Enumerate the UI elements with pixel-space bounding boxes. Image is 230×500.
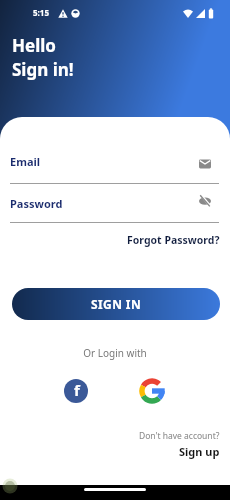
staticText: Sign in!	[12, 58, 74, 81]
staticText: 5:15	[33, 7, 49, 18]
staticText: Password	[10, 196, 63, 211]
staticText: Don't have account?	[139, 430, 220, 442]
button[interactable]	[139, 378, 165, 404]
button[interactable]: SIGN IN	[12, 288, 220, 320]
button[interactable]: Forgot Password?	[127, 233, 220, 247]
button[interactable]: Password	[0, 193, 230, 225]
button[interactable]: Sign up	[179, 444, 220, 459]
button[interactable]: Email	[0, 150, 230, 186]
button[interactable]: f	[64, 379, 88, 403]
staticText: SIGN IN	[91, 296, 142, 312]
staticText: Hello	[12, 34, 56, 57]
staticText: f	[74, 380, 80, 400]
staticText: Or Login with	[0, 346, 230, 360]
staticText: Email	[10, 154, 41, 169]
